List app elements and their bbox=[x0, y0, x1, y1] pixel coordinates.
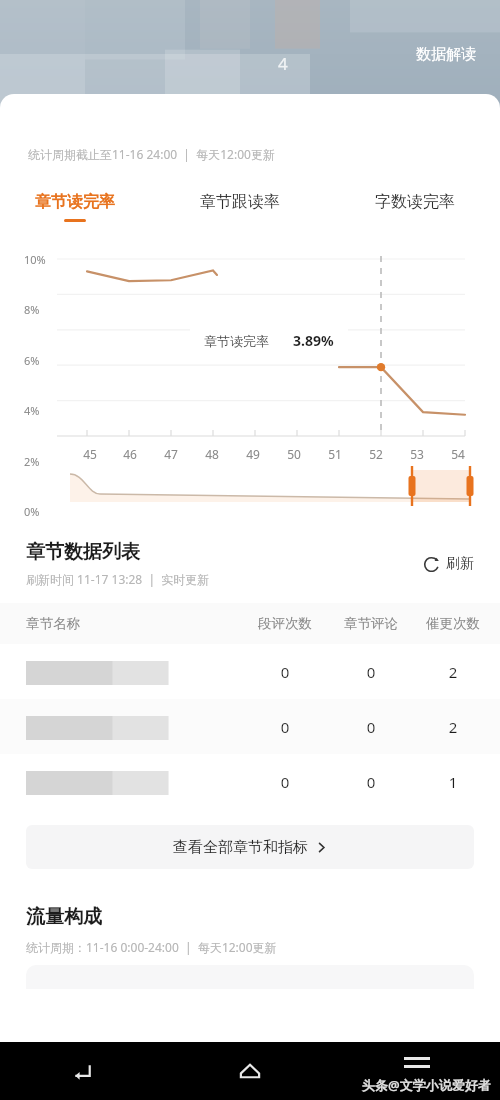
staticText: 数据解读 bbox=[416, 45, 476, 64]
staticText: 3.89% bbox=[293, 331, 334, 350]
button[interactable]: 主页 bbox=[166, 1042, 333, 1100]
staticText: 刷新时间 11-17 13:28 | 实时更新 bbox=[26, 571, 210, 587]
staticText: 1 bbox=[414, 772, 492, 792]
staticText: 字数读完率 bbox=[375, 192, 455, 212]
button[interactable]: 0 bbox=[0, 699, 500, 754]
other: 刷新 bbox=[423, 556, 440, 573]
staticText: 45 bbox=[83, 446, 97, 462]
staticText: 0% bbox=[24, 504, 40, 519]
staticText: 54 bbox=[451, 446, 465, 462]
staticText: 46 bbox=[123, 446, 137, 462]
staticText: 0 bbox=[242, 717, 328, 737]
button[interactable]: 0 bbox=[0, 754, 500, 809]
staticText: 8% bbox=[24, 302, 40, 317]
staticText: 10% bbox=[24, 252, 46, 267]
staticText: 章节读完率 bbox=[35, 192, 115, 212]
staticText: 催更次数 bbox=[414, 615, 492, 632]
staticText: 章节名称 bbox=[26, 615, 242, 632]
staticText: 统计周期截止至11-16 24:00 | 每天12:00更新 bbox=[28, 146, 275, 162]
staticText: 2 bbox=[414, 662, 492, 682]
staticText: 刷新 bbox=[446, 555, 474, 573]
staticText: 章节跟读率 bbox=[200, 192, 280, 212]
staticText: 0 bbox=[242, 772, 328, 792]
button[interactable]: 数据解读 bbox=[406, 37, 486, 72]
staticText: 53 bbox=[410, 446, 424, 462]
button[interactable]: 刷新 bbox=[419, 549, 478, 579]
staticText: 49 bbox=[246, 446, 260, 462]
staticText: 0 bbox=[328, 717, 414, 737]
button[interactable]: 返回 bbox=[0, 1042, 166, 1100]
button[interactable]: 章节读完率 bbox=[0, 188, 150, 226]
staticText: 0 bbox=[242, 662, 328, 682]
staticText: 查看全部章节和指标 bbox=[173, 838, 308, 857]
button[interactable]: 查看全部章节和指标 bbox=[26, 825, 474, 869]
staticText: 4% bbox=[24, 403, 40, 418]
staticText: 章节读完率 bbox=[204, 333, 269, 349]
staticText: 50 bbox=[287, 446, 301, 462]
staticText: 52 bbox=[369, 446, 383, 462]
button[interactable]: 章节跟读率 bbox=[150, 188, 330, 226]
staticText: 0 bbox=[328, 772, 414, 792]
staticText: 头条@文学小说爱好者 bbox=[362, 1076, 491, 1094]
staticText: 2% bbox=[24, 454, 40, 469]
staticText: 流量构成 bbox=[26, 905, 102, 929]
staticText: 统计周期：11-16 0:00-24:00 | 每天12:00更新 bbox=[26, 939, 277, 955]
staticText: 章节评论 bbox=[328, 615, 414, 632]
staticText: 段评次数 bbox=[242, 615, 328, 632]
staticText: 章节数据列表 bbox=[26, 540, 140, 564]
button[interactable]: 0 bbox=[0, 644, 500, 699]
button[interactable]: 最近任务 bbox=[333, 1042, 500, 1100]
staticText: 2 bbox=[414, 717, 492, 737]
staticText: 47 bbox=[164, 446, 178, 462]
button[interactable]: 字数读完率 bbox=[330, 188, 500, 226]
staticText: 0 bbox=[328, 662, 414, 682]
staticText: 4 bbox=[278, 52, 288, 75]
staticText: 51 bbox=[328, 446, 342, 462]
staticText: 48 bbox=[205, 446, 219, 462]
staticText: 6% bbox=[24, 353, 40, 368]
